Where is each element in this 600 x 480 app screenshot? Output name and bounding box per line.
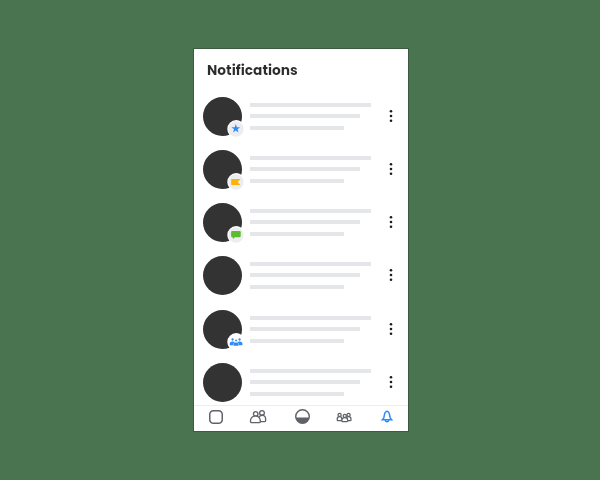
button[interactable]: More options: [194, 90, 408, 143]
button[interactable]: More options: [380, 158, 402, 180]
button[interactable]: More options: [194, 303, 408, 356]
button[interactable]: More options: [194, 196, 408, 249]
button[interactable]: Friends: [236, 406, 279, 431]
button[interactable]: More options: [380, 318, 402, 340]
button[interactable]: Groups: [322, 406, 365, 431]
button[interactable]: Notifications: [207, 61, 298, 80]
button[interactable]: More options: [194, 143, 408, 196]
button[interactable]: Profile: [279, 406, 322, 431]
button[interactable]: Notifications: [365, 406, 408, 431]
button[interactable]: More options: [380, 371, 402, 393]
button[interactable]: More options: [380, 105, 402, 127]
button[interactable]: More options: [380, 211, 402, 233]
staticText: Notifications: [207, 61, 298, 80]
button[interactable]: Home: [194, 406, 236, 431]
button[interactable]: More options: [380, 264, 402, 286]
button[interactable]: More options: [194, 249, 408, 302]
button[interactable]: More options: [194, 356, 408, 409]
